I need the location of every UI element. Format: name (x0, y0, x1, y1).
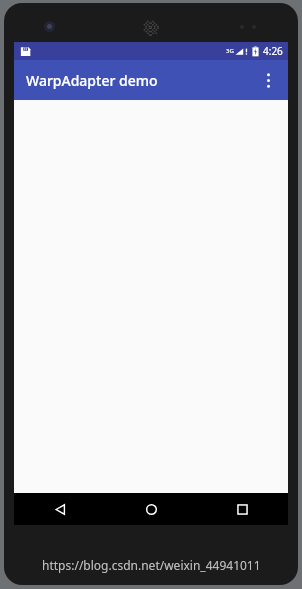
button[interactable]: More options (248, 60, 288, 100)
button[interactable]: Home (106, 493, 197, 525)
staticText: WarpAdapter demo (26, 71, 158, 90)
button[interactable]: Recent apps (197, 493, 288, 525)
staticText: 4:26 (263, 44, 283, 58)
button[interactable]: Back (14, 493, 106, 525)
staticText: https://blog.csdn.net/weixin_44941011 (42, 557, 261, 573)
staticText: 3G (226, 47, 234, 55)
